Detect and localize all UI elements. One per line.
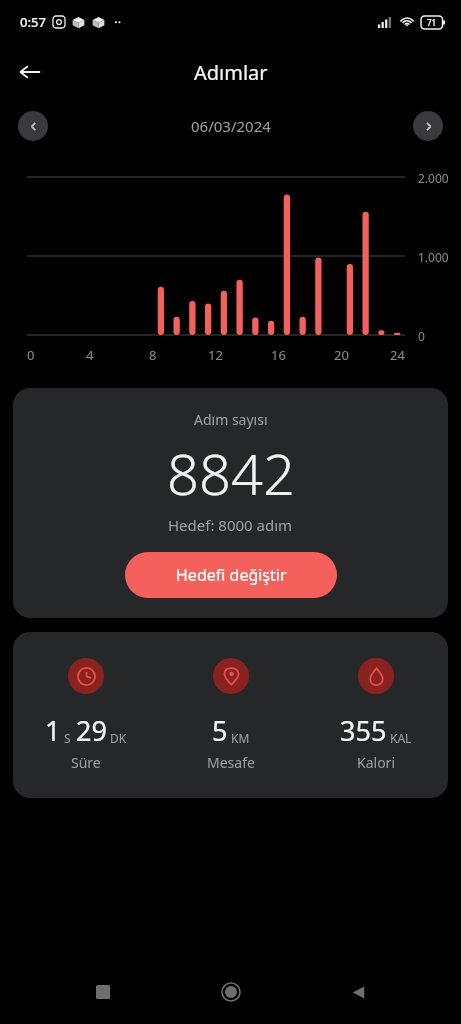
staticText: Hedef: 8000 adım — [168, 515, 293, 535]
staticText: 1 — [45, 712, 61, 749]
button[interactable]: Previous day — [18, 111, 48, 141]
staticText: 12 — [208, 346, 223, 364]
staticText: 0 — [27, 346, 35, 364]
button[interactable]: Next day — [413, 111, 443, 141]
staticText: 0 — [418, 328, 425, 344]
staticText: KAL — [390, 730, 412, 746]
staticText: Mesafe — [207, 753, 255, 772]
staticText: 8842 — [167, 435, 295, 511]
staticText: Kalori — [357, 753, 395, 772]
staticText: Süre — [71, 753, 101, 772]
staticText: 0:57 — [20, 13, 46, 31]
button[interactable]: Back — [334, 968, 382, 1016]
staticText: 24 — [390, 346, 405, 364]
staticText: 71 — [427, 17, 437, 28]
staticText: Hedefi değiştir — [176, 564, 287, 586]
staticText: 5 — [212, 712, 228, 749]
staticText: 16 — [271, 346, 286, 364]
button[interactable]: Recent apps — [79, 968, 127, 1016]
staticText: 06/03/2024 — [191, 116, 271, 136]
staticText: DK — [110, 730, 127, 746]
button[interactable]: Home — [207, 968, 255, 1016]
staticText: 1.000 — [418, 249, 449, 265]
staticText: KM — [231, 730, 250, 746]
staticText: 20 — [334, 346, 349, 364]
staticText: 29 — [76, 712, 107, 749]
staticText: 4 — [86, 346, 94, 364]
button[interactable]: Back — [8, 50, 52, 94]
staticText: 2.000 — [418, 170, 449, 186]
button[interactable]: Adım sayısı — [13, 388, 448, 618]
button[interactable]: Hedefi değiştir — [125, 552, 337, 598]
staticText: S — [64, 730, 71, 746]
staticText: Adım sayısı — [194, 410, 268, 429]
staticText: 8 — [149, 346, 157, 364]
staticText: Adımlar — [194, 59, 268, 86]
button[interactable]: 1 — [13, 632, 448, 798]
staticText: 355 — [340, 712, 387, 749]
